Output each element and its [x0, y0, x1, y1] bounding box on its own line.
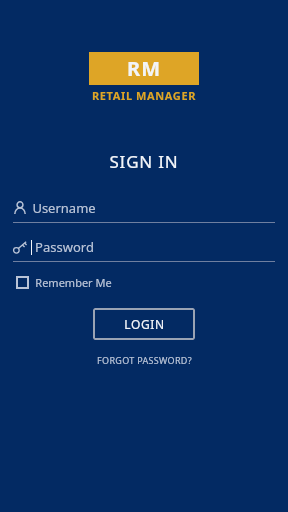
staticText: Username: [32, 199, 96, 217]
staticText: Password: [35, 238, 94, 256]
staticText: LOGIN: [124, 316, 165, 332]
button[interactable]: FORGOT PASSWORD?: [93, 352, 196, 368]
button[interactable]: Password: [13, 238, 275, 262]
other: Username: [13, 201, 27, 215]
other: Password: [13, 240, 27, 254]
staticText: SIGN IN: [109, 150, 179, 173]
button[interactable]: Username: [13, 199, 275, 223]
staticText: FORGOT PASSWORD?: [97, 354, 192, 366]
staticText: Remember Me: [35, 275, 112, 290]
button[interactable]: LOGIN: [93, 308, 195, 340]
staticText: RETAIL MANAGER: [92, 88, 196, 103]
staticText: RM: [127, 55, 161, 82]
button[interactable]: Remember Me: [16, 275, 112, 290]
